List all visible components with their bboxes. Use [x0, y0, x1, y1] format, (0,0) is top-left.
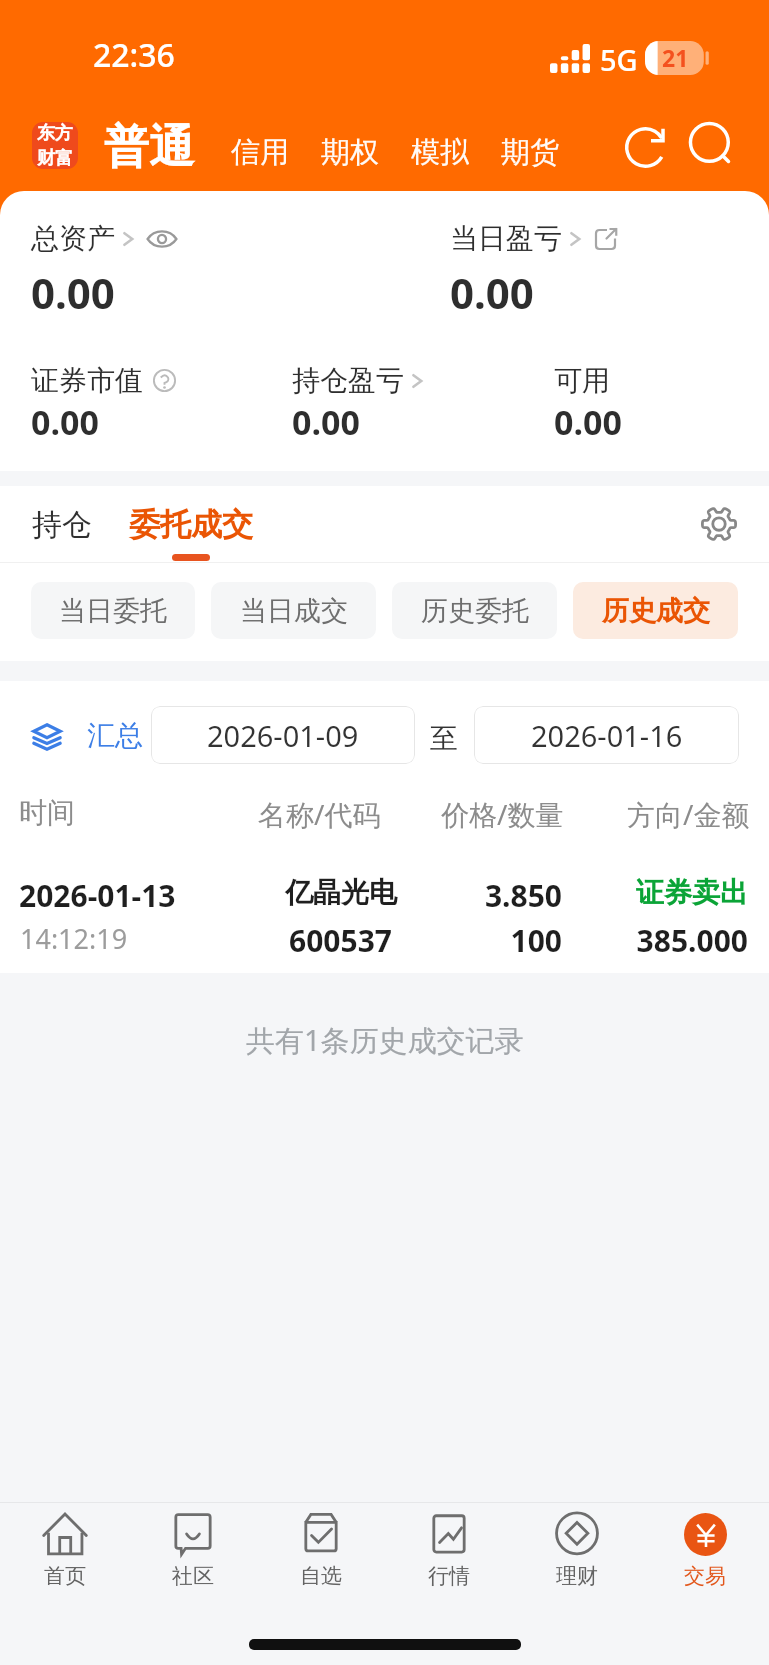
staticText: 当日成交	[240, 594, 348, 628]
button[interactable]: 当日委托	[31, 582, 195, 639]
button[interactable]: 持仓盈亏	[292, 363, 426, 398]
staticText: 0.00	[31, 264, 115, 321]
button[interactable]: 历史委托	[392, 582, 557, 639]
button[interactable]: 首页	[0, 1512, 129, 1589]
staticText: 东方	[37, 122, 73, 145]
staticText: 0.00	[292, 399, 360, 445]
staticText: 方向/金额	[627, 795, 750, 833]
button[interactable]: 2026-01-16	[474, 706, 739, 764]
button[interactable]: Open detail	[589, 224, 621, 254]
staticText: 0.00	[554, 399, 622, 445]
button[interactable]: Toggle visibility	[145, 226, 179, 252]
staticText: 亿晶光电	[285, 875, 397, 910]
button[interactable]: 期权	[321, 134, 379, 171]
staticText: 0.00	[450, 264, 534, 321]
staticText: 委托成交	[129, 505, 253, 544]
staticText: 385.000	[600, 920, 748, 961]
staticText: 汇总	[87, 718, 143, 753]
staticText: 历史委托	[421, 594, 529, 628]
staticText: 证券市值	[31, 363, 143, 398]
button[interactable]: 2026-01-13	[0, 839, 769, 973]
staticText: 2026-01-13	[19, 875, 176, 916]
staticText: 价格/数量	[441, 795, 564, 833]
staticText: 交易	[684, 1563, 726, 1589]
staticText: 14:12:19	[20, 920, 128, 957]
staticText: 持仓盈亏	[292, 363, 404, 398]
staticText: 行情	[428, 1563, 470, 1589]
button[interactable]: 持仓	[30, 506, 94, 544]
staticText: 时间	[19, 795, 75, 830]
button[interactable]: Search	[686, 119, 738, 171]
button[interactable]: 普通	[102, 119, 196, 176]
button[interactable]: 模拟	[411, 134, 469, 171]
staticText: 名称/代码	[258, 795, 381, 833]
staticText: 5G	[600, 40, 638, 79]
staticText: 当日委托	[59, 594, 167, 628]
staticText: 21	[662, 42, 689, 73]
button[interactable]: Settings	[694, 499, 744, 549]
staticText: 共有1条历史成交记录	[246, 1020, 524, 1060]
button[interactable]: 历史成交	[573, 582, 738, 639]
staticText: 首页	[44, 1563, 86, 1589]
staticText: 理财	[556, 1563, 598, 1589]
staticText: 2026-01-09	[207, 716, 359, 755]
button[interactable]: 信用	[231, 134, 289, 171]
button[interactable]: 自选	[257, 1512, 385, 1589]
button[interactable]: 行情	[385, 1512, 513, 1589]
staticText: 可用	[554, 363, 610, 398]
staticText: 自选	[300, 1563, 342, 1589]
button[interactable]: 交易	[641, 1512, 769, 1589]
staticText: 期货	[501, 134, 559, 171]
staticText: 100	[420, 920, 562, 961]
staticText: 3.850	[420, 875, 562, 916]
staticText: 2026-01-16	[531, 716, 683, 755]
button[interactable]: 总资产	[31, 221, 179, 256]
button[interactable]: 社区	[129, 1512, 257, 1589]
staticText: 普通	[104, 119, 194, 176]
button[interactable]: 汇总	[32, 718, 143, 753]
button[interactable]: 当日盈亏	[450, 221, 621, 256]
button[interactable]: 东方财富	[32, 122, 78, 169]
staticText: 社区	[172, 1563, 214, 1589]
staticText: 模拟	[411, 134, 469, 171]
button[interactable]: Refresh	[619, 121, 671, 173]
staticText: 600537	[289, 920, 392, 961]
staticText: 财富	[37, 147, 73, 169]
button[interactable]: 证券市值	[31, 363, 177, 398]
button[interactable]: 期货	[501, 134, 559, 171]
staticText: 信用	[231, 134, 289, 171]
staticText: 0.00	[31, 399, 99, 445]
staticText: 历史成交	[602, 594, 710, 628]
button[interactable]: 2026-01-09	[151, 706, 415, 764]
staticText: 持仓	[32, 506, 92, 544]
staticText: 当日盈亏	[450, 221, 562, 256]
staticText: 至	[430, 721, 458, 756]
staticText: 期权	[321, 134, 379, 171]
staticText: 证券卖出	[600, 875, 748, 910]
staticText: 总资产	[31, 221, 115, 256]
staticText: 22:36	[93, 33, 175, 77]
button[interactable]: 理财	[513, 1512, 641, 1589]
button[interactable]: 委托成交	[127, 505, 255, 544]
button[interactable]: 当日成交	[211, 582, 376, 639]
